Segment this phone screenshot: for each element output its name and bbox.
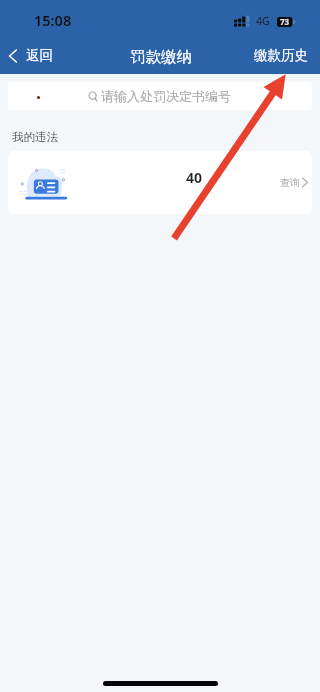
staticText: 4G	[256, 14, 270, 28]
button[interactable]: 40	[8, 151, 312, 214]
staticText: 我的违法	[12, 130, 58, 144]
staticText: 返回	[26, 47, 53, 64]
staticText: 请输入处罚决定书编号	[101, 88, 231, 104]
button[interactable]: 缴款历史	[242, 41, 320, 70]
staticText: 73	[280, 16, 290, 27]
staticText: 罚款缴纳	[130, 47, 192, 67]
staticText: 查询	[280, 176, 300, 189]
staticText: 40	[186, 168, 203, 187]
button[interactable]: 请输入处罚决定书编号	[8, 82, 312, 110]
button[interactable]: 返回	[0, 41, 63, 70]
staticText: 15:08	[34, 10, 72, 30]
button[interactable]: 查询	[270, 168, 312, 197]
